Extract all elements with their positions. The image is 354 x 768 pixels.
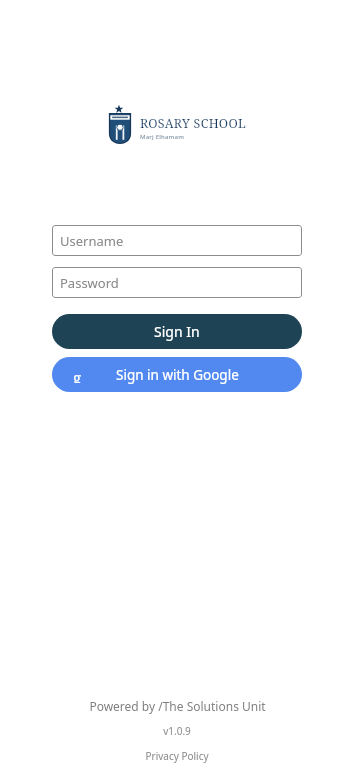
- staticText: g: [73, 367, 82, 383]
- other: Rosary School logo: [107, 105, 133, 145]
- staticText: v1.0.9: [163, 724, 191, 738]
- button[interactable]: Username: [52, 225, 302, 256]
- staticText: Password: [60, 274, 119, 292]
- staticText: ROSARY SCHOOL: [140, 115, 247, 132]
- staticText: Privacy Policy: [145, 749, 209, 763]
- button[interactable]: Privacy Policy: [139, 748, 215, 764]
- staticText: Sign In: [154, 322, 200, 341]
- button[interactable]: g: [52, 357, 302, 392]
- button[interactable]: Sign In: [52, 314, 302, 349]
- staticText: Powered by /The Solutions Unit: [89, 698, 266, 714]
- staticText: Username: [60, 232, 124, 250]
- button[interactable]: Password: [52, 267, 302, 298]
- staticText: Marj Elhamam: [140, 133, 185, 141]
- staticText: Sign in with Google: [116, 366, 239, 384]
